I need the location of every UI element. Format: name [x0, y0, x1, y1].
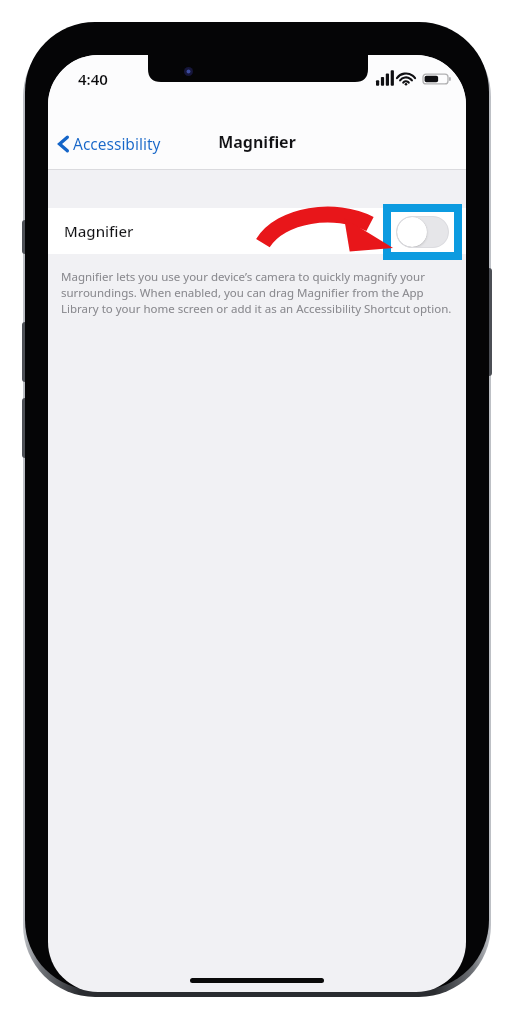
staticText: Magnifier — [218, 131, 296, 153]
staticText: Magnifier lets you use your device’s cam… — [61, 269, 456, 317]
button[interactable]: Magnifier toggle, off — [396, 216, 449, 248]
staticText: Accessibility — [73, 133, 161, 154]
button[interactable]: Accessibility — [54, 129, 165, 158]
staticText: Magnifier — [64, 221, 134, 241]
button[interactable]: Magnifier — [48, 208, 466, 254]
staticText: 4:40 — [78, 69, 108, 89]
